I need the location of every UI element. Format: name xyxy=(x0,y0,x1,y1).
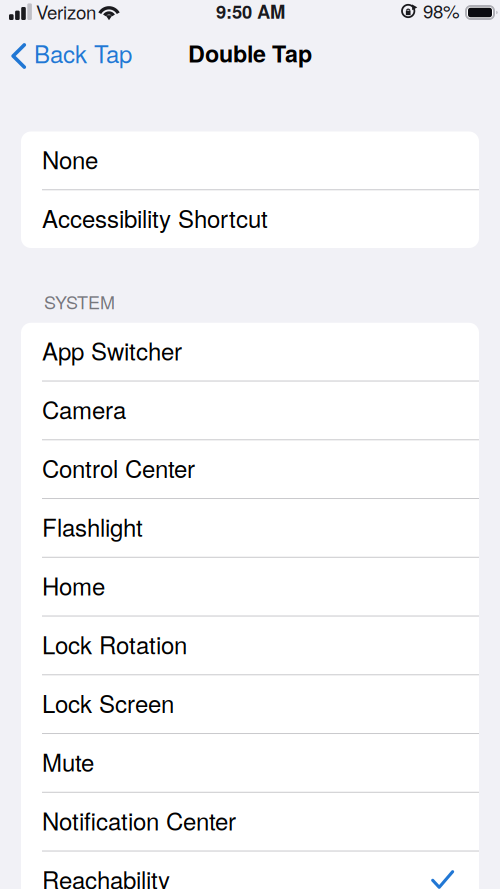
staticText: SYSTEM xyxy=(44,288,115,314)
button[interactable]: Accessibility Shortcut xyxy=(21,190,479,248)
staticText: 9:50 AM xyxy=(216,0,285,24)
button[interactable]: Notification Center xyxy=(21,793,479,851)
button[interactable]: Lock Screen xyxy=(21,675,479,733)
staticText: Notification Center xyxy=(42,803,236,837)
staticText: Control Center xyxy=(42,450,195,485)
staticText: Accessibility Shortcut xyxy=(42,200,268,235)
button[interactable]: None xyxy=(21,131,479,189)
button[interactable]: Camera xyxy=(21,381,479,439)
button[interactable]: Lock Rotation xyxy=(21,616,479,674)
staticText: None xyxy=(42,142,98,176)
staticText: Double Tap xyxy=(188,36,312,70)
button[interactable]: Home xyxy=(21,558,479,616)
staticText: Lock Rotation xyxy=(42,627,187,661)
button[interactable]: Flashlight xyxy=(21,499,479,557)
button[interactable]: Control Center xyxy=(21,440,479,498)
button[interactable]: App Switcher xyxy=(21,323,479,381)
staticText: Reachability xyxy=(42,862,170,889)
button[interactable]: Reachability xyxy=(21,851,479,889)
staticText: 98% xyxy=(423,0,460,24)
staticText: Home xyxy=(42,568,105,602)
staticText: Camera xyxy=(42,392,126,426)
staticText: Flashlight xyxy=(42,509,143,544)
staticText: Verizon xyxy=(36,0,96,25)
staticText: Lock Screen xyxy=(42,685,174,720)
staticText: App Switcher xyxy=(42,333,182,367)
button[interactable]: Mute xyxy=(21,734,479,792)
staticText: Back Tap xyxy=(34,36,132,70)
staticText: Mute xyxy=(42,744,94,779)
button[interactable]: Back Tap xyxy=(0,31,142,75)
